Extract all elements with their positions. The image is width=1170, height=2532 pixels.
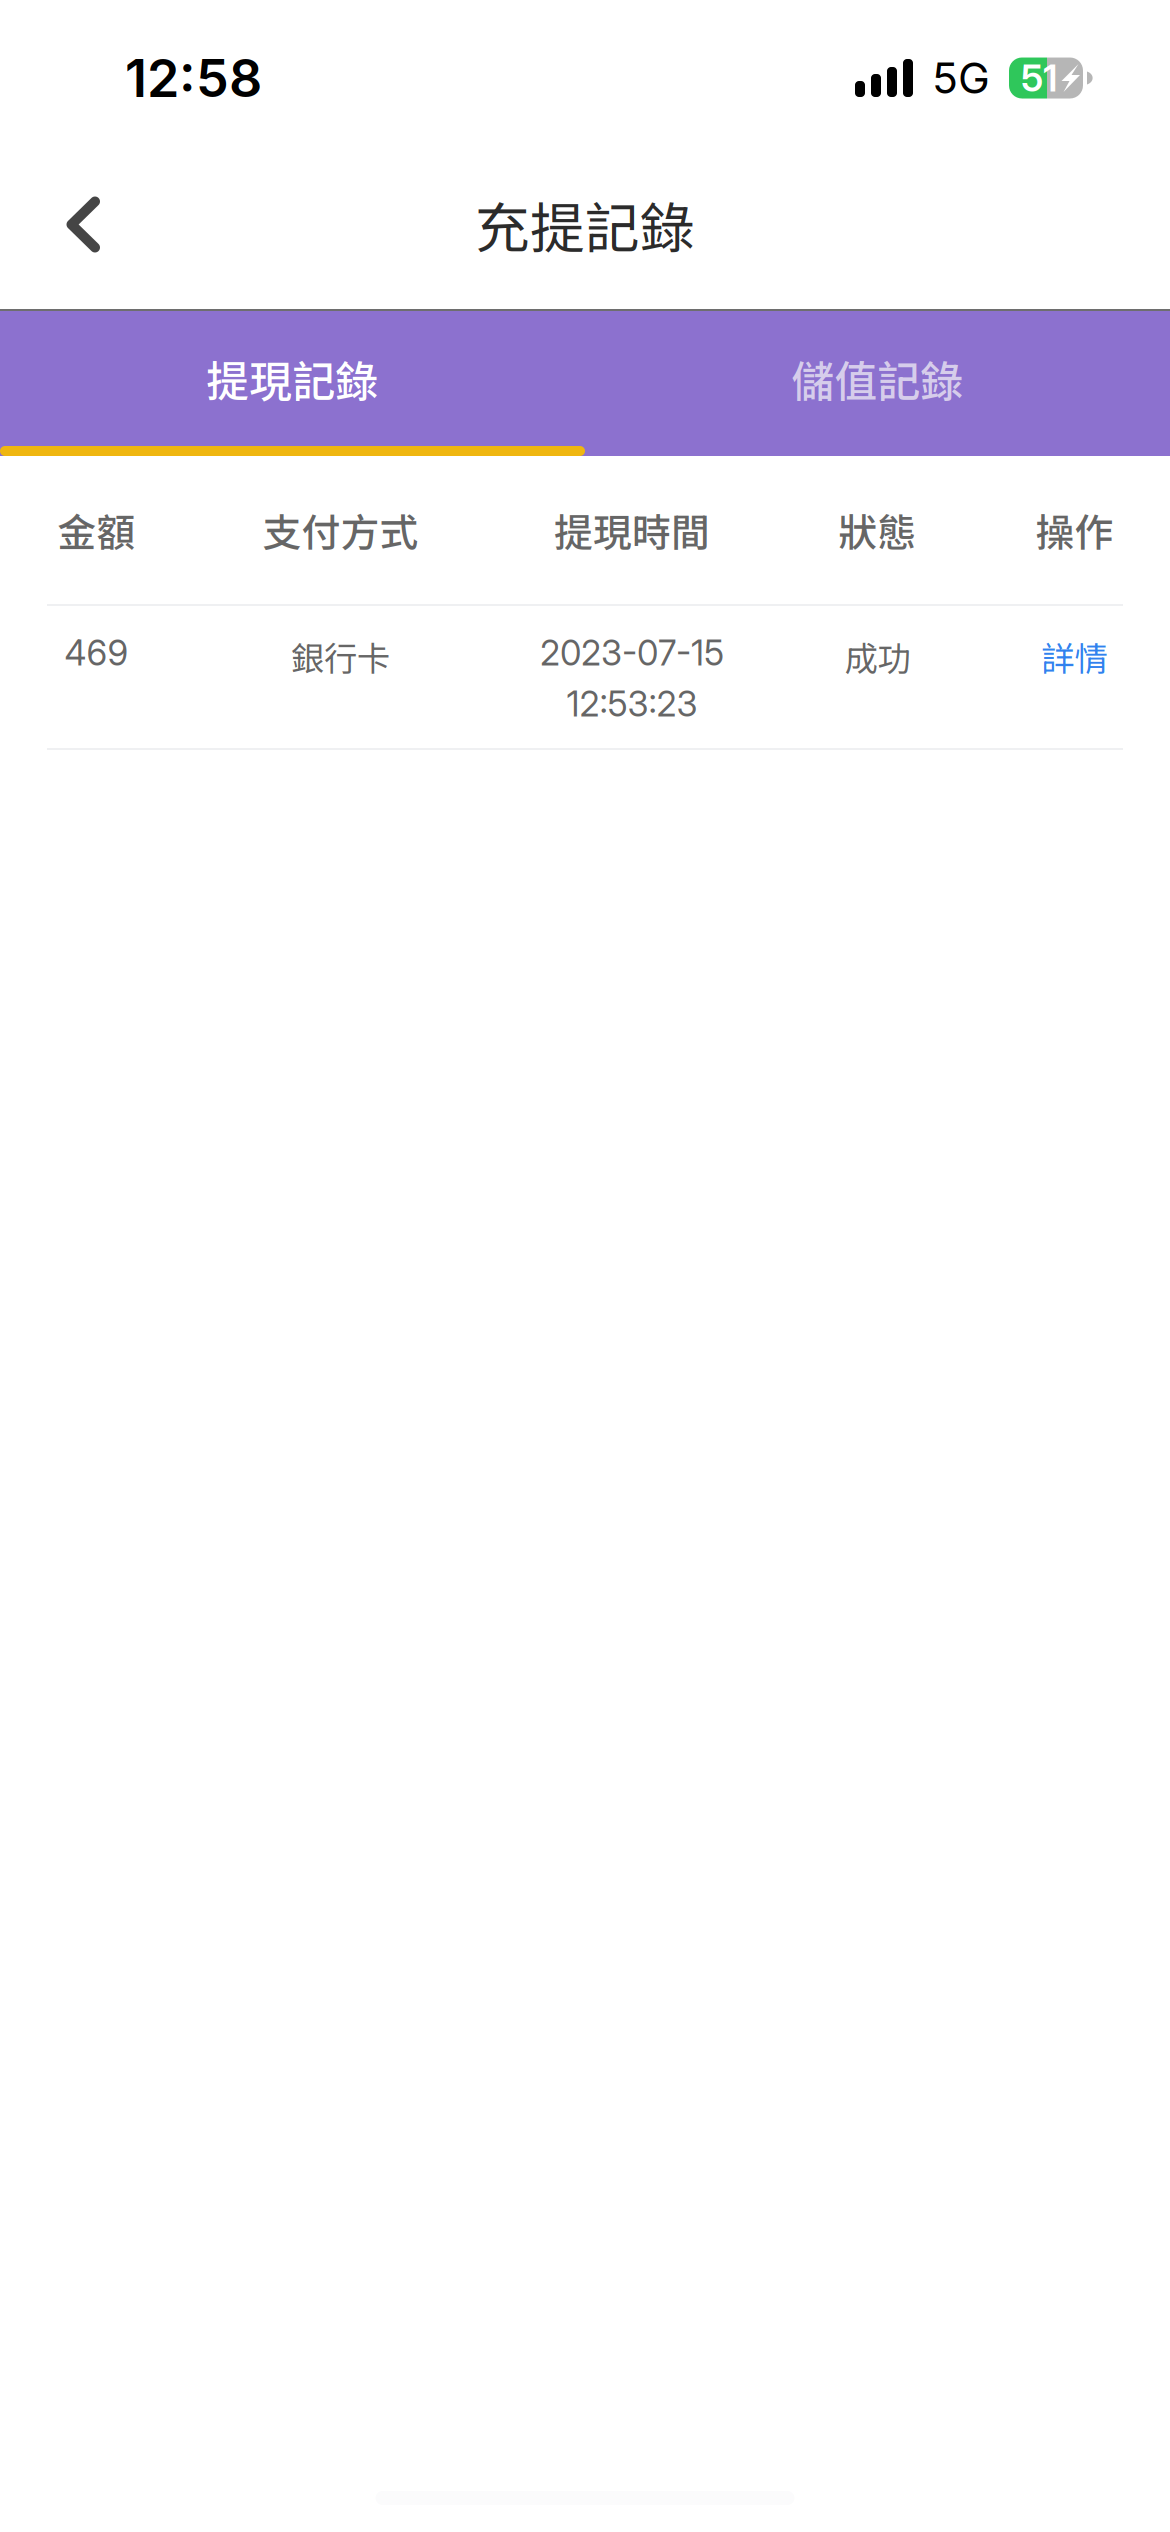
button[interactable]: Back [0, 162, 142, 286]
button[interactable]: 提現記錄 [0, 311, 585, 446]
staticText: 狀態 [838, 502, 916, 558]
staticText: 提現記錄 [206, 348, 378, 409]
staticText: 支付方式 [262, 502, 418, 558]
staticText: 操作 [1035, 502, 1113, 558]
staticText: 詳情 [1041, 632, 1107, 680]
staticText: 銀行卡 [291, 632, 390, 680]
staticText: 12:58 [125, 46, 262, 109]
staticText: 充提記錄 [475, 185, 695, 264]
button[interactable]: 詳情 [979, 632, 1170, 748]
button[interactable]: 儲值記錄 [585, 311, 1170, 446]
staticText: 提現時間 [554, 502, 710, 558]
staticText: 金額 [57, 502, 135, 558]
staticText: 儲值記錄 [791, 348, 963, 409]
staticText: 5G [932, 52, 990, 104]
staticText: 成功 [844, 632, 910, 680]
staticText: 2023-07-15 [540, 632, 724, 674]
staticText: 12:53:23 [566, 683, 697, 725]
staticText: 469 [64, 632, 128, 674]
staticText: 51 [1021, 55, 1058, 101]
